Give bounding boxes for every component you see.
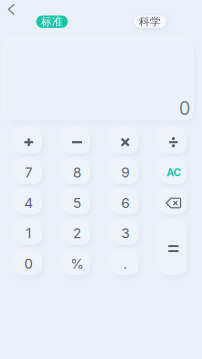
staticText: AC	[166, 166, 180, 179]
staticText: .	[123, 256, 127, 272]
button[interactable]: 8	[64, 161, 90, 184]
button[interactable]: Divide	[160, 131, 187, 153]
button[interactable]: Subtract	[64, 131, 90, 153]
staticText: 0	[179, 97, 190, 119]
staticText: 0	[24, 256, 33, 272]
staticText: 1	[26, 225, 32, 242]
button[interactable]: 9	[112, 161, 138, 184]
staticText: 标准	[41, 15, 63, 28]
button[interactable]: 6	[112, 192, 138, 214]
button[interactable]: Delete	[160, 192, 187, 214]
staticText: 6	[121, 195, 129, 211]
staticText: 4	[24, 195, 33, 211]
button[interactable]: 3	[112, 222, 138, 245]
staticText: 9	[121, 164, 129, 181]
staticText: 3	[121, 225, 129, 242]
button[interactable]: Add	[15, 131, 42, 153]
button[interactable]: 0	[15, 252, 42, 275]
button[interactable]: 标准	[36, 15, 68, 28]
button[interactable]: AC	[160, 161, 187, 184]
button[interactable]: 4	[15, 192, 42, 214]
staticText: 2	[73, 225, 81, 242]
staticText: 科学	[139, 15, 161, 28]
button[interactable]: 7	[15, 161, 42, 184]
staticText: 7	[25, 164, 33, 181]
button[interactable]: Multiply	[112, 131, 138, 153]
staticText: %	[70, 256, 83, 272]
staticText: 8	[73, 164, 81, 181]
staticText: 5	[73, 195, 81, 211]
button[interactable]: .	[112, 252, 138, 275]
button[interactable]: Equals	[160, 222, 187, 275]
button[interactable]: 科学	[134, 15, 166, 28]
button[interactable]: 5	[64, 192, 90, 214]
button[interactable]: Back	[0, 0, 24, 20]
button[interactable]: %	[64, 252, 90, 275]
button[interactable]: 1	[15, 222, 42, 245]
button[interactable]: 2	[64, 222, 90, 245]
